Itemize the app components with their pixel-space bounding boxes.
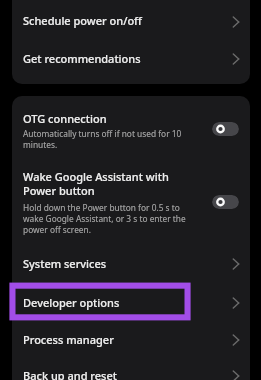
staticText: Developer options <box>23 295 120 310</box>
staticText: Process manager <box>23 332 114 347</box>
button[interactable]: Toggle <box>212 195 239 209</box>
button[interactable]: Process manager <box>12 326 250 365</box>
button[interactable]: Get recommendations <box>12 44 250 82</box>
staticText: Schedule power on/off <box>23 13 142 28</box>
staticText: System services <box>23 256 107 271</box>
staticText: OTG connection <box>23 111 107 126</box>
button[interactable]: Developer options <box>12 287 250 326</box>
button[interactable]: Schedule power on/off <box>12 6 250 44</box>
button[interactable]: Wake Google Assistant with Power button <box>12 156 250 248</box>
button[interactable]: OTG connection <box>12 96 250 156</box>
button[interactable]: Toggle <box>212 122 239 136</box>
staticText: Back up and reset <box>23 368 117 380</box>
staticText: Wake Google Assistant with Power button <box>23 169 169 198</box>
staticText: Hold down the Power button for 0.5 s to … <box>23 202 186 235</box>
button[interactable]: System services <box>12 248 250 287</box>
staticText: Automatically turns off if not used for … <box>23 128 182 150</box>
staticText: Get recommendations <box>23 51 141 66</box>
button[interactable]: Back up and reset <box>12 365 250 380</box>
